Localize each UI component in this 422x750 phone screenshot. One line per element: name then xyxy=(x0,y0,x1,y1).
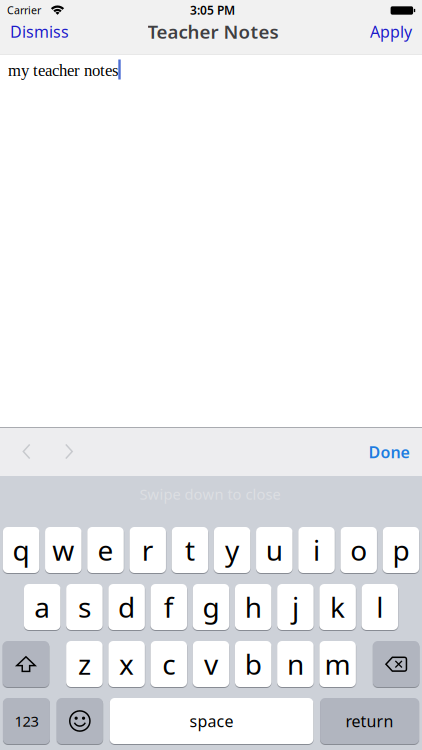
staticText: o xyxy=(350,531,367,569)
button[interactable]: space xyxy=(110,698,313,744)
button[interactable]: c xyxy=(151,641,187,687)
staticText: h xyxy=(245,588,262,626)
staticText: l xyxy=(376,588,383,626)
staticText: n xyxy=(287,645,304,683)
staticText: c xyxy=(162,645,175,683)
staticText: 3:05 PM xyxy=(190,2,235,18)
staticText: a xyxy=(34,588,50,626)
button[interactable]: g xyxy=(193,584,229,630)
button[interactable]: z xyxy=(66,641,103,687)
button[interactable]: v xyxy=(193,641,229,687)
staticText: 123 xyxy=(14,711,38,731)
staticText: u xyxy=(266,531,283,569)
staticText: e xyxy=(97,531,113,569)
staticText: Done xyxy=(368,441,409,463)
staticText: Dismiss xyxy=(10,21,69,42)
staticText: my teacher notes xyxy=(8,61,118,80)
staticText: z xyxy=(78,645,91,683)
button[interactable]: t xyxy=(172,527,208,573)
staticText: s xyxy=(78,588,91,626)
button[interactable]: a xyxy=(24,584,60,630)
staticText: w xyxy=(52,531,74,569)
staticText: g xyxy=(202,588,219,626)
button[interactable]: i xyxy=(298,527,335,573)
button[interactable]: m xyxy=(319,641,356,687)
staticText: t xyxy=(185,531,195,569)
button[interactable]: Dismiss xyxy=(10,21,69,42)
staticText: y xyxy=(225,531,239,569)
staticText: j xyxy=(292,588,299,626)
button[interactable]: s xyxy=(66,584,103,630)
button[interactable]: Apply xyxy=(370,21,412,42)
button[interactable]: l xyxy=(361,584,398,630)
staticText: Apply xyxy=(370,21,412,42)
button[interactable]: return xyxy=(320,698,419,744)
staticText: Swipe down to close xyxy=(139,484,280,504)
button[interactable]: h xyxy=(235,584,271,630)
staticText: d xyxy=(118,588,135,626)
staticText: Teacher Notes xyxy=(147,19,278,44)
button[interactable]: e xyxy=(87,527,124,573)
staticText: space xyxy=(189,710,233,732)
staticText: q xyxy=(13,531,30,569)
button[interactable]: f xyxy=(151,584,187,630)
staticText: k xyxy=(330,588,345,626)
staticText: x xyxy=(119,645,134,683)
staticText: f xyxy=(164,588,174,626)
button[interactable]: n xyxy=(277,641,314,687)
staticText: p xyxy=(392,531,409,569)
button[interactable]: Shift xyxy=(3,641,49,687)
button[interactable]: Next field xyxy=(56,429,82,473)
button[interactable]: o xyxy=(340,527,377,573)
staticText: v xyxy=(204,645,218,683)
button[interactable]: j xyxy=(277,584,314,630)
button[interactable]: Delete xyxy=(373,641,419,687)
staticText: m xyxy=(325,645,351,683)
button[interactable]: y xyxy=(214,527,250,573)
button[interactable]: u xyxy=(256,527,292,573)
staticText: i xyxy=(313,531,320,569)
button[interactable]: x xyxy=(108,641,145,687)
button[interactable]: q xyxy=(3,527,39,573)
button[interactable]: b xyxy=(235,641,271,687)
button[interactable]: Numbers xyxy=(3,698,50,744)
button[interactable]: r xyxy=(129,527,166,573)
button[interactable]: p xyxy=(383,527,419,573)
button[interactable]: Previous field xyxy=(13,429,39,473)
button[interactable]: Emoji xyxy=(57,698,103,744)
button[interactable]: w xyxy=(45,527,81,573)
staticText: return xyxy=(346,710,394,732)
button[interactable]: Done xyxy=(368,441,409,463)
staticText: Carrier xyxy=(7,3,41,17)
button[interactable]: d xyxy=(108,584,145,630)
staticText: b xyxy=(245,645,262,683)
staticText: r xyxy=(142,531,154,569)
button[interactable]: k xyxy=(319,584,356,630)
